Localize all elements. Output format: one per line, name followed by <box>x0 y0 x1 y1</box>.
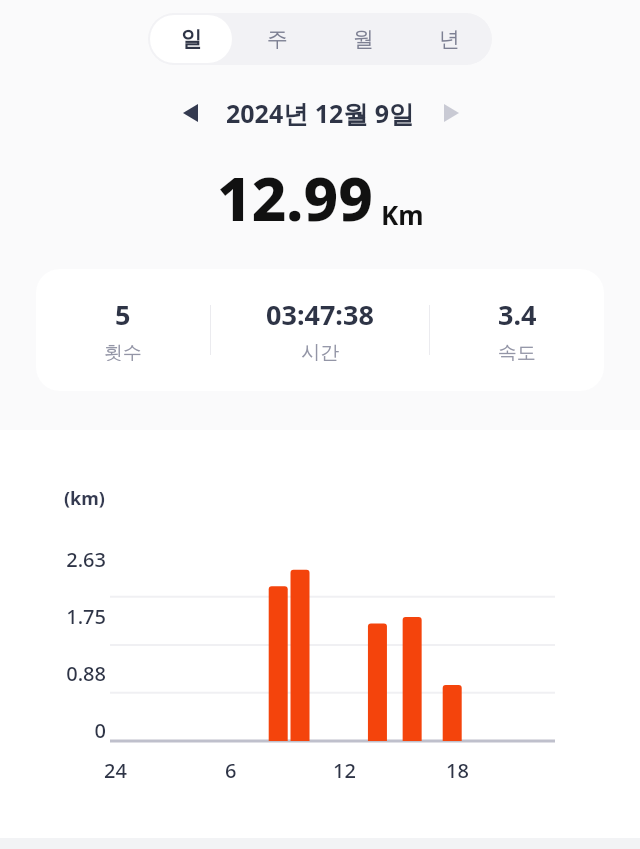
staticText: Km <box>381 197 424 232</box>
button[interactable]: 일 <box>150 15 232 63</box>
staticText: 0 <box>94 717 106 739</box>
staticText: 18 <box>446 757 469 784</box>
staticText: 월 <box>353 26 374 52</box>
staticText: 03:47:38 <box>266 296 374 333</box>
staticText: 1.75 <box>66 603 106 625</box>
staticText: 주 <box>267 26 288 52</box>
staticText: 6 <box>225 757 237 784</box>
staticText: 0.88 <box>66 660 106 682</box>
staticText: 시간 <box>301 341 339 365</box>
button[interactable]: Previous day <box>168 91 212 135</box>
staticText: 횟수 <box>104 341 142 365</box>
staticText: (km) <box>64 486 105 511</box>
staticText: 5 <box>115 296 131 333</box>
staticText: 일 <box>181 26 202 52</box>
button[interactable]: 년 <box>406 13 492 65</box>
button[interactable]: Next day <box>429 91 473 135</box>
button[interactable]: 월 <box>320 13 406 65</box>
staticText: 24 <box>104 757 127 784</box>
staticText: 속도 <box>498 341 536 365</box>
staticText: 2024년 12월 9일 <box>226 96 415 130</box>
staticText: 3.4 <box>498 296 537 333</box>
button[interactable]: 5 <box>36 269 604 391</box>
staticText: 12 <box>333 757 356 784</box>
staticText: 12.99 <box>217 157 373 239</box>
staticText: 2.63 <box>66 546 106 568</box>
button[interactable]: 주 <box>234 13 320 65</box>
staticText: 년 <box>439 26 460 52</box>
